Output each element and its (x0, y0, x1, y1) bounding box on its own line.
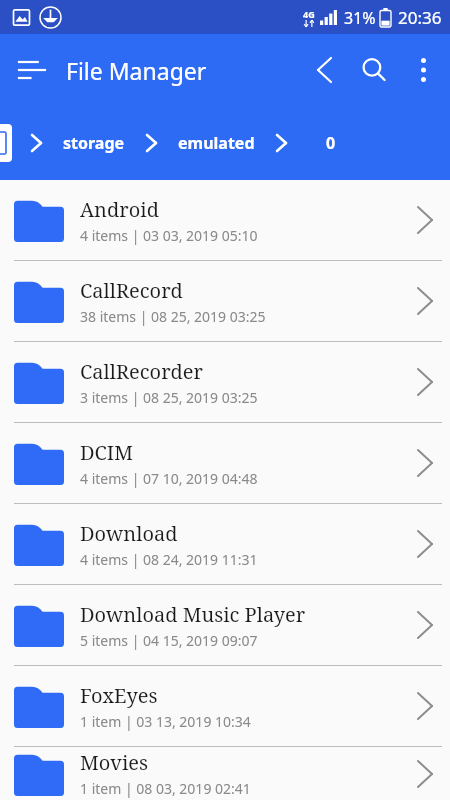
button[interactable]: Download Music Player (0, 585, 450, 665)
staticText: 3 items | 08 25, 2019 03:25 (80, 388, 258, 407)
button[interactable]: More options (400, 47, 446, 93)
staticText: 0 (326, 132, 336, 154)
staticText: emulated (178, 132, 255, 154)
button[interactable]: CallRecord (0, 261, 450, 341)
staticText: Movies (80, 749, 148, 776)
staticText: Android (80, 196, 159, 223)
staticText: 4 items | 07 10, 2019 04:48 (80, 469, 258, 488)
button[interactable]: Search (348, 44, 400, 96)
staticText: 31% (344, 7, 376, 29)
staticText: 1 item | 03 13, 2019 10:34 (80, 712, 251, 731)
button[interactable]: Internal storage (0, 124, 12, 162)
staticText: 1 item | 08 03, 2019 02:41 (80, 779, 251, 798)
staticText: storage (63, 132, 125, 154)
staticText: FoxEyes (80, 682, 158, 709)
button[interactable]: DCIM (0, 423, 450, 503)
staticText: DCIM (80, 439, 133, 466)
staticText: 5 items | 04 15, 2019 09:07 (80, 631, 258, 650)
button[interactable]: storage (63, 132, 125, 154)
staticText: 4G (303, 8, 315, 20)
staticText: Download Music Player (80, 601, 306, 628)
button[interactable]: Back (300, 46, 348, 94)
button[interactable]: emulated (178, 132, 255, 154)
staticText: 38 items | 08 25, 2019 03:25 (80, 307, 266, 326)
staticText: CallRecord (80, 277, 183, 304)
staticText: CallRecorder (80, 358, 203, 385)
button[interactable]: Android (0, 180, 450, 260)
staticText: 4 items | 03 03, 2019 05:10 (80, 226, 258, 245)
button[interactable]: FoxEyes (0, 666, 450, 746)
button[interactable]: Movies (0, 747, 450, 800)
staticText: 4 items | 08 24, 2019 11:31 (80, 550, 258, 569)
button[interactable]: Menu (10, 48, 54, 92)
button[interactable]: 0 (326, 132, 336, 154)
button[interactable]: Download (0, 504, 450, 584)
staticText: File Manager (66, 55, 207, 86)
staticText: 20:36 (398, 6, 442, 29)
staticText: Download (80, 520, 178, 547)
button[interactable]: CallRecorder (0, 342, 450, 422)
